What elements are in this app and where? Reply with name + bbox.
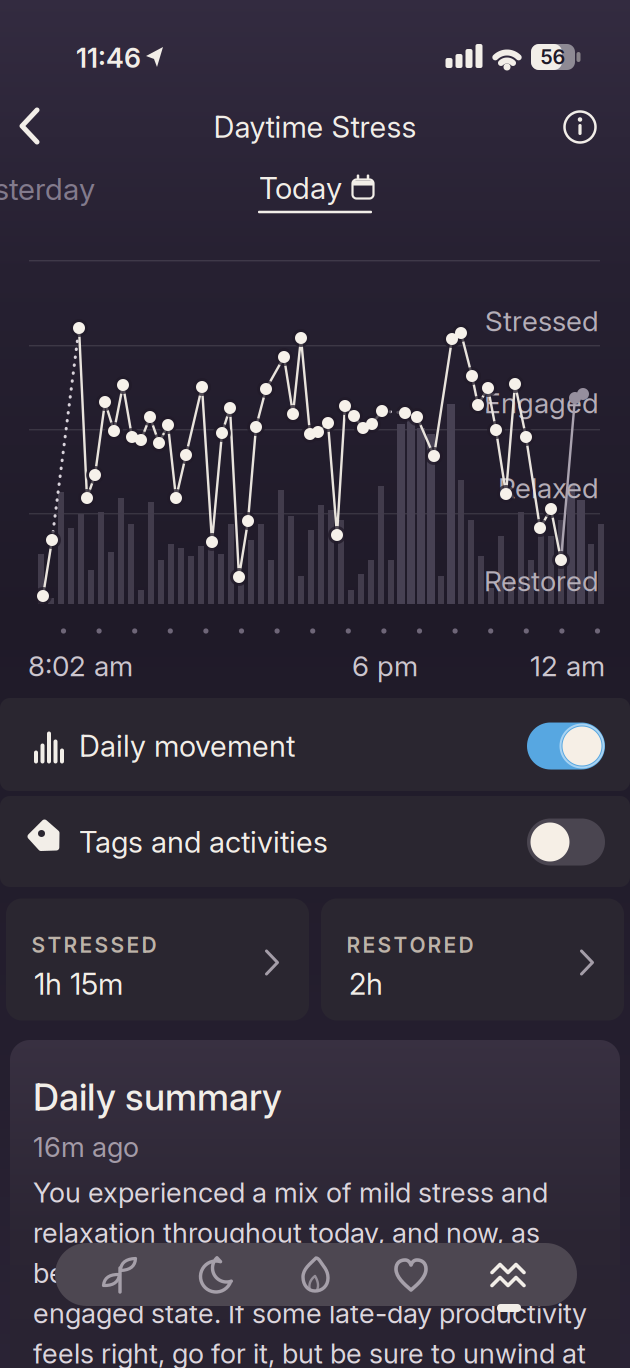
button[interactable]: Tags and activities [0,0,630,1368]
staticText: 8:02 am [28,649,133,683]
button[interactable]: Sleep [0,0,630,1368]
staticText: Engaged [484,386,599,420]
button[interactable]: Info [0,0,630,1368]
button[interactable]: STRESSED [0,0,630,1368]
staticText: Daytime Stress [213,109,416,145]
staticText: Today [259,170,342,206]
staticText: 1h 15m [34,966,123,1002]
staticText: 2h [349,966,383,1002]
staticText: Tags and activities [79,824,328,860]
staticText: R E S T O R E D [346,932,473,958]
button[interactable]: Activity [0,0,630,1368]
button[interactable]: Today [0,0,630,1368]
staticText: Relaxed [498,471,599,505]
staticText: 16m ago [33,1130,139,1164]
staticText: Restored [484,564,599,598]
staticText: 6 pm [352,649,418,683]
button[interactable]: Yesterday [0,0,630,1368]
staticText: You experienced a mix of mild stress and… [33,1176,587,1368]
button[interactable]: Heart health [0,0,630,1368]
staticText: 12 am [530,649,605,683]
button[interactable]: Back [0,0,630,1368]
staticText: Yesterday [0,171,95,207]
button[interactable]: Daily movement [0,0,630,1368]
staticText: Stressed [485,304,599,338]
staticText: S T R E S S E D [31,932,156,958]
button[interactable]: RESTORED [0,0,630,1368]
button[interactable]: Stress [0,0,630,1368]
button[interactable]: Today tab [0,0,630,1368]
staticText: 11:46 [76,42,141,74]
staticText: 56 [540,45,565,69]
staticText: Daily summary [33,1075,282,1119]
staticText: Daily movement [79,728,295,764]
